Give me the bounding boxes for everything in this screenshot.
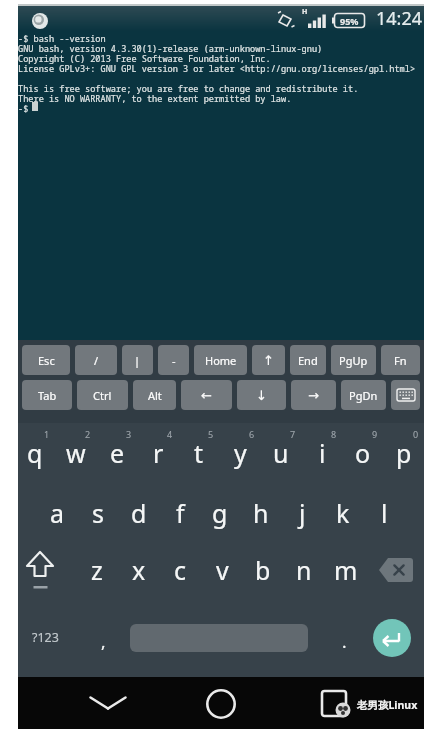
button[interactable]: d <box>119 487 159 539</box>
staticText: Ctrl <box>93 388 112 403</box>
staticText: u <box>273 436 289 470</box>
button[interactable]: . <box>332 623 356 659</box>
button[interactable]: u <box>261 427 301 479</box>
button[interactable]: g <box>200 487 240 539</box>
button[interactable]: e <box>97 427 137 479</box>
staticText: r <box>153 436 164 470</box>
button[interactable]: End <box>290 345 326 375</box>
staticText: s <box>92 496 104 530</box>
staticText: d <box>131 496 147 530</box>
staticText: → <box>308 388 319 403</box>
staticText: Home <box>205 353 237 368</box>
staticText: 9 <box>372 428 378 440</box>
button[interactable]: b <box>243 544 283 596</box>
staticText: ↓ <box>256 388 267 403</box>
button[interactable]: o <box>343 427 383 479</box>
staticText: -$ bash --version GNU bash, version 4.3.… <box>18 33 416 114</box>
staticText: Fn <box>394 353 407 368</box>
button[interactable]: | <box>122 345 153 375</box>
button[interactable]: y <box>220 427 260 479</box>
staticText: 2 <box>85 428 91 440</box>
button[interactable] <box>200 683 242 725</box>
button[interactable] <box>373 619 411 657</box>
staticText: q <box>27 436 43 470</box>
button[interactable]: p <box>384 427 424 479</box>
button[interactable]: x <box>119 544 159 596</box>
staticText: x <box>132 553 146 587</box>
staticText: 7 <box>290 428 296 440</box>
staticText: , <box>101 630 106 653</box>
button[interactable]: z <box>77 544 117 596</box>
staticText: y <box>234 436 247 470</box>
button[interactable] <box>315 683 353 723</box>
staticText: p <box>396 436 412 470</box>
button[interactable]: ?123 <box>18 617 72 657</box>
staticText: Tab <box>38 388 57 403</box>
button[interactable]: k <box>323 487 363 539</box>
button[interactable]: t <box>179 427 219 479</box>
staticText: End <box>298 353 318 368</box>
staticText: w <box>66 436 86 470</box>
button[interactable]: a <box>37 487 77 539</box>
button[interactable] <box>391 380 420 410</box>
staticText: ?123 <box>32 629 59 646</box>
button[interactable]: r <box>138 427 178 479</box>
button[interactable]: l <box>364 487 404 539</box>
button[interactable]: q <box>15 427 55 479</box>
staticText: 老男孩Linux <box>357 698 418 712</box>
staticText: 8 <box>331 428 337 440</box>
button[interactable]: Home <box>194 345 247 375</box>
button[interactable]: Fn <box>381 345 420 375</box>
staticText: g <box>212 496 228 530</box>
button[interactable]: PgDn <box>341 380 386 410</box>
button[interactable]: → <box>291 380 336 410</box>
staticText: | <box>134 353 141 368</box>
staticText: o <box>355 436 371 470</box>
button[interactable]: PgUp <box>331 345 376 375</box>
staticText: 5 <box>208 428 214 440</box>
staticText: H <box>302 7 308 17</box>
button[interactable]: c <box>160 544 200 596</box>
button[interactable] <box>18 545 62 595</box>
staticText: 14:24 <box>376 6 423 31</box>
button[interactable]: Tab <box>22 380 72 410</box>
staticText: / <box>94 353 99 368</box>
button[interactable] <box>86 684 130 722</box>
staticText: - <box>172 353 176 368</box>
staticText: f <box>176 496 185 530</box>
staticText: h <box>253 496 269 530</box>
button[interactable]: ↑ <box>252 345 285 375</box>
button[interactable]: v <box>202 544 242 596</box>
staticText: ← <box>201 388 212 403</box>
button[interactable]: , <box>91 623 115 659</box>
button[interactable]: m <box>326 544 366 596</box>
button[interactable]: n <box>284 544 324 596</box>
button[interactable]: Alt <box>133 380 176 410</box>
button[interactable]: w <box>56 427 96 479</box>
staticText: v <box>216 553 229 587</box>
button[interactable]: / <box>75 345 117 375</box>
staticText: j <box>299 496 306 530</box>
button[interactable] <box>130 624 308 652</box>
button[interactable]: i <box>302 427 342 479</box>
staticText: i <box>319 436 326 470</box>
staticText: Esc <box>38 353 55 368</box>
button[interactable]: ↓ <box>237 380 286 410</box>
staticText: c <box>174 553 187 587</box>
staticText: Alt <box>148 388 162 403</box>
staticText: m <box>334 553 358 587</box>
staticText: 95% <box>340 15 359 27</box>
button[interactable]: h <box>241 487 281 539</box>
button[interactable]: f <box>160 487 200 539</box>
staticText: e <box>110 436 125 470</box>
staticText: a <box>50 496 65 530</box>
button[interactable]: j <box>282 487 322 539</box>
button[interactable]: s <box>78 487 118 539</box>
button[interactable]: Ctrl <box>77 380 128 410</box>
staticText: 3 <box>126 428 132 440</box>
button[interactable] <box>374 547 418 593</box>
button[interactable]: - <box>158 345 189 375</box>
staticText: PgUp <box>339 353 368 368</box>
button[interactable]: Esc <box>22 345 70 375</box>
button[interactable]: ← <box>181 380 232 410</box>
